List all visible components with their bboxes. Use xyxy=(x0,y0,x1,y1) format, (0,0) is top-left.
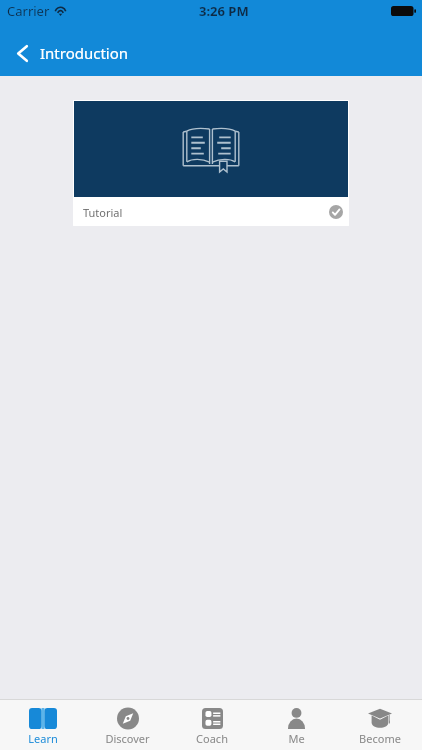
staticText: Me xyxy=(288,731,305,746)
staticText: 3:26 PM xyxy=(199,2,249,20)
staticText: Tutorial xyxy=(83,205,123,220)
button[interactable]: Back xyxy=(0,29,40,73)
button[interactable]: Me xyxy=(254,700,338,750)
button[interactable]: Become xyxy=(338,700,422,750)
button[interactable]: Discover xyxy=(85,700,170,750)
staticText: Learn xyxy=(28,731,58,746)
button[interactable]: Learn xyxy=(0,700,85,750)
button[interactable]: Coach xyxy=(170,700,254,750)
staticText: Introduction xyxy=(40,43,129,63)
staticText: Become xyxy=(359,731,401,746)
staticText: Discover xyxy=(105,731,150,746)
button[interactable]: Tutorial xyxy=(73,100,349,226)
staticText: Carrier xyxy=(7,2,50,20)
staticText: Coach xyxy=(196,731,228,746)
